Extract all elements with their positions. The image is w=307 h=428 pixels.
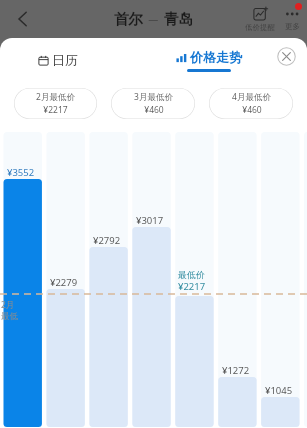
staticText: ¥3017	[136, 214, 164, 227]
staticText: 2月最低价	[36, 91, 75, 103]
staticText: 低价提醒	[245, 23, 275, 32]
staticText: ¥1272	[222, 364, 250, 377]
staticText: ¥460	[242, 104, 262, 116]
staticText: 2月	[1, 299, 15, 311]
button[interactable]: 日历	[34, 48, 82, 72]
button[interactable]: Close	[273, 43, 299, 69]
staticText: ¥460	[144, 104, 164, 116]
staticText: 最低价	[178, 269, 205, 280]
button[interactable]: 4月最低价	[209, 88, 293, 119]
button[interactable]: Back	[8, 4, 38, 34]
staticText: 最低	[1, 311, 18, 322]
staticText: ¥3552	[7, 166, 35, 179]
staticText: ¥2279	[50, 276, 78, 289]
staticText: 更多	[285, 22, 300, 31]
button[interactable]: 低价提醒	[242, 5, 278, 34]
staticText: 青岛	[164, 10, 193, 28]
staticText: 4月最低价	[232, 91, 271, 103]
staticText: —	[143, 12, 164, 26]
staticText: 首尔	[114, 10, 143, 28]
staticText: 价格走势	[190, 49, 242, 65]
staticText: ¥2217	[178, 280, 206, 293]
staticText: ¥1045	[265, 384, 293, 397]
button[interactable]: 更多	[282, 6, 303, 33]
staticText: 3月最低价	[134, 91, 173, 103]
button[interactable]: 价格走势	[176, 49, 242, 72]
staticText: 日历	[52, 52, 78, 68]
button[interactable]: 3月最低价	[111, 88, 195, 119]
button[interactable]: 2月最低价	[14, 88, 97, 119]
staticText: ¥2792	[93, 234, 121, 247]
staticText: ¥2217	[43, 104, 68, 116]
